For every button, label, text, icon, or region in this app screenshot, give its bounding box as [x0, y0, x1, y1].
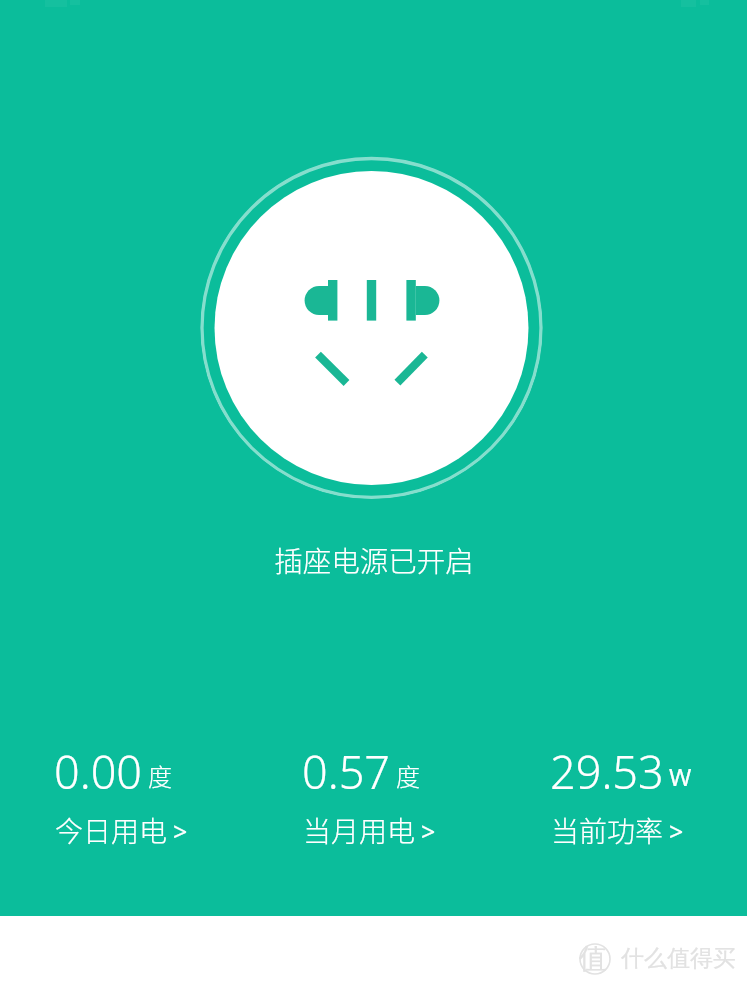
- staticText: >: [421, 814, 436, 848]
- staticText: 度: [396, 758, 420, 793]
- staticText: 什么值得买: [621, 944, 736, 973]
- staticText: 当前功率: [551, 810, 664, 851]
- button[interactable]: Toggle socket power: [200, 156, 543, 499]
- staticText: W: [669, 760, 692, 793]
- staticText: 今日用电: [55, 810, 168, 851]
- staticText: 度: [148, 758, 172, 793]
- button[interactable]: 0.57: [248, 741, 496, 851]
- staticText: 29.53: [550, 741, 664, 802]
- staticText: 0.00: [54, 741, 143, 802]
- staticText: >: [173, 814, 188, 848]
- staticText: >: [669, 814, 684, 848]
- staticText: 插座电源已开启: [274, 539, 474, 580]
- button[interactable]: 29.53: [496, 741, 744, 851]
- staticText: 0.57: [302, 741, 391, 802]
- button[interactable]: 0.00: [0, 741, 248, 851]
- staticText: 当月用电: [303, 810, 416, 851]
- staticText: 值: [579, 941, 607, 975]
